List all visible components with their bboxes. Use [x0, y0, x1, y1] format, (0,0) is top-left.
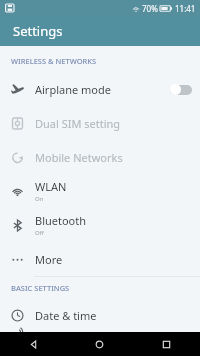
- staticText: Off: [35, 229, 44, 237]
- staticText: Date & time: [35, 308, 97, 323]
- button[interactable]: More: [0, 242, 200, 276]
- button[interactable]: Dual SIM setting: [0, 106, 200, 140]
- staticText: Airplane mode: [35, 82, 111, 97]
- button[interactable]: Mobile Networks: [0, 140, 200, 174]
- staticText: BASIC SETTINGS: [11, 283, 70, 293]
- staticText: 70%: [142, 3, 158, 14]
- staticText: More: [35, 252, 63, 267]
- staticText: Bluetooth: [35, 213, 87, 228]
- button[interactable]: Airplane mode: [0, 72, 200, 106]
- staticText: Dual SIM setting: [35, 116, 121, 131]
- staticText: Mobile Networks: [35, 150, 123, 165]
- button[interactable]: Date & time: [0, 299, 200, 332]
- button[interactable]: WLAN: [0, 174, 200, 208]
- button[interactable]: Bluetooth: [0, 208, 200, 242]
- staticText: WLAN: [35, 179, 67, 194]
- staticText: Settings: [13, 22, 63, 40]
- staticText: On: [35, 195, 44, 203]
- button[interactable]: Recents: [133, 332, 200, 356]
- button[interactable]: Airplane mode toggle: [170, 84, 192, 95]
- staticText: WIRELESS & NETWORKS: [11, 56, 97, 66]
- button[interactable]: Home: [66, 332, 133, 356]
- staticText: 11:41: [175, 3, 196, 14]
- button[interactable]: Back: [0, 332, 66, 356]
